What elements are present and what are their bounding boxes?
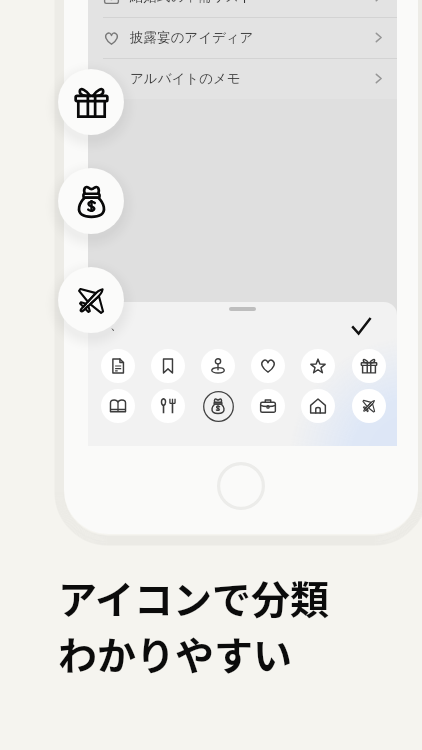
button[interactable]: pin bbox=[201, 349, 235, 383]
button[interactable]: 披露宴のアイディア bbox=[88, 17, 397, 58]
button[interactable]: gift bbox=[352, 349, 386, 383]
button[interactable]: doc bbox=[101, 349, 135, 383]
button[interactable]: plane bbox=[352, 389, 386, 423]
staticText: アイコンで分類 bbox=[58, 569, 330, 625]
button[interactable]: bookmark bbox=[151, 349, 185, 383]
button[interactable]: fork bbox=[151, 389, 185, 423]
staticText: 結婚式の準備リスト bbox=[130, 0, 253, 5]
button[interactable]: Done bbox=[340, 305, 382, 347]
button[interactable]: bag bbox=[251, 389, 285, 423]
button[interactable]: gift bbox=[58, 69, 124, 135]
button[interactable]: heart bbox=[251, 349, 285, 383]
staticText: 披露宴のアイディア bbox=[130, 29, 254, 46]
button[interactable]: money bbox=[201, 389, 235, 423]
button[interactable]: plane bbox=[58, 267, 124, 333]
button[interactable]: money bbox=[58, 168, 124, 234]
staticText: アルバイトのメモ bbox=[130, 70, 241, 87]
button[interactable]: star bbox=[301, 349, 335, 383]
button[interactable]: 結婚式の準備リスト bbox=[88, 0, 397, 17]
button[interactable]: home bbox=[301, 389, 335, 423]
staticText: わかりやすい bbox=[58, 625, 293, 681]
button[interactable]: アルバイトのメモ bbox=[88, 58, 397, 99]
button[interactable]: book bbox=[101, 389, 135, 423]
staticText: 、 bbox=[110, 316, 123, 332]
